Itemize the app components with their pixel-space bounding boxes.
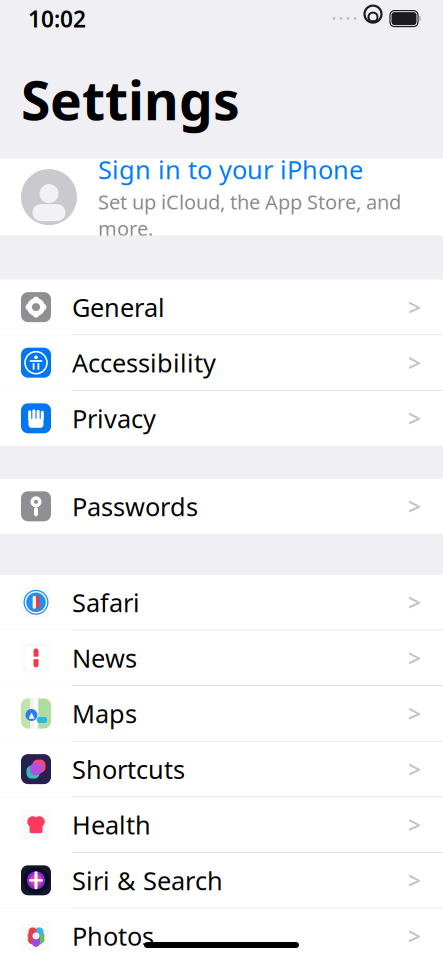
- staticText: >: [408, 643, 421, 673]
- staticText: >: [408, 698, 421, 728]
- button[interactable]: Sign in to your iPhone: [0, 159, 443, 236]
- staticText: General: [72, 290, 165, 324]
- staticText: Privacy: [72, 401, 156, 435]
- button[interactable]: Passwords: [0, 479, 443, 534]
- button[interactable]: Shortcuts: [0, 742, 443, 797]
- staticText: >: [408, 810, 421, 840]
- staticText: >: [408, 348, 421, 378]
- staticText: Accessibility: [72, 346, 216, 379]
- button[interactable]: General: [0, 280, 443, 335]
- staticText: Photos: [72, 919, 154, 953]
- staticText: Safari: [72, 585, 140, 619]
- staticText: >: [408, 292, 421, 322]
- staticText: • • • •: [332, 11, 357, 26]
- staticText: Siri & Search: [72, 863, 223, 897]
- button[interactable]: Safari: [0, 575, 443, 630]
- staticText: Set up iCloud, the App Store, and more.: [98, 188, 401, 241]
- staticText: Sign in to your iPhone: [98, 153, 363, 186]
- staticText: >: [408, 865, 421, 895]
- button[interactable]: Photos: [0, 908, 443, 960]
- staticText: >: [408, 491, 421, 521]
- staticText: Passwords: [72, 489, 198, 523]
- staticText: News: [72, 641, 137, 675]
- button[interactable]: News: [0, 630, 443, 685]
- staticText: Settings: [21, 64, 240, 135]
- button[interactable]: ▲: [0, 686, 443, 741]
- staticText: >: [408, 754, 421, 784]
- staticText: Shortcuts: [72, 752, 185, 786]
- staticText: Maps: [72, 697, 137, 730]
- button[interactable]: Siri & Search: [0, 853, 443, 908]
- staticText: >: [408, 921, 421, 951]
- staticText: ▲: [28, 710, 34, 720]
- staticText: 10:02: [28, 3, 86, 34]
- staticText: Health: [72, 808, 151, 841]
- staticText: >: [408, 587, 421, 617]
- staticText: >: [408, 403, 421, 433]
- button[interactable]: Privacy: [0, 391, 443, 446]
- button[interactable]: Health: [0, 797, 443, 852]
- button[interactable]: Accessibility: [0, 335, 443, 390]
